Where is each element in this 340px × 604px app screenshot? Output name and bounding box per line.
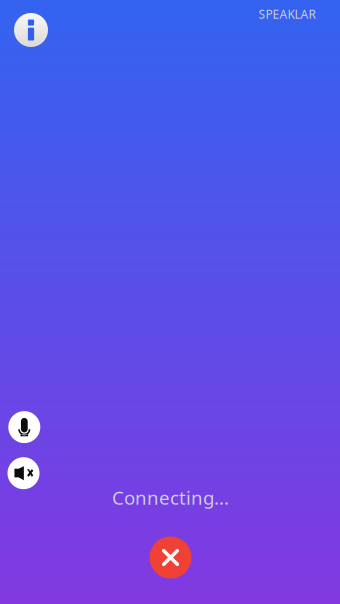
button[interactable]: Speaker off (7, 457, 39, 489)
button[interactable]: End call (149, 536, 191, 578)
button[interactable]: Call info (14, 13, 48, 47)
staticText: Connecting... (112, 485, 229, 510)
staticText: SPEAKLAR (258, 6, 315, 22)
button[interactable]: Mute microphone (8, 411, 40, 443)
